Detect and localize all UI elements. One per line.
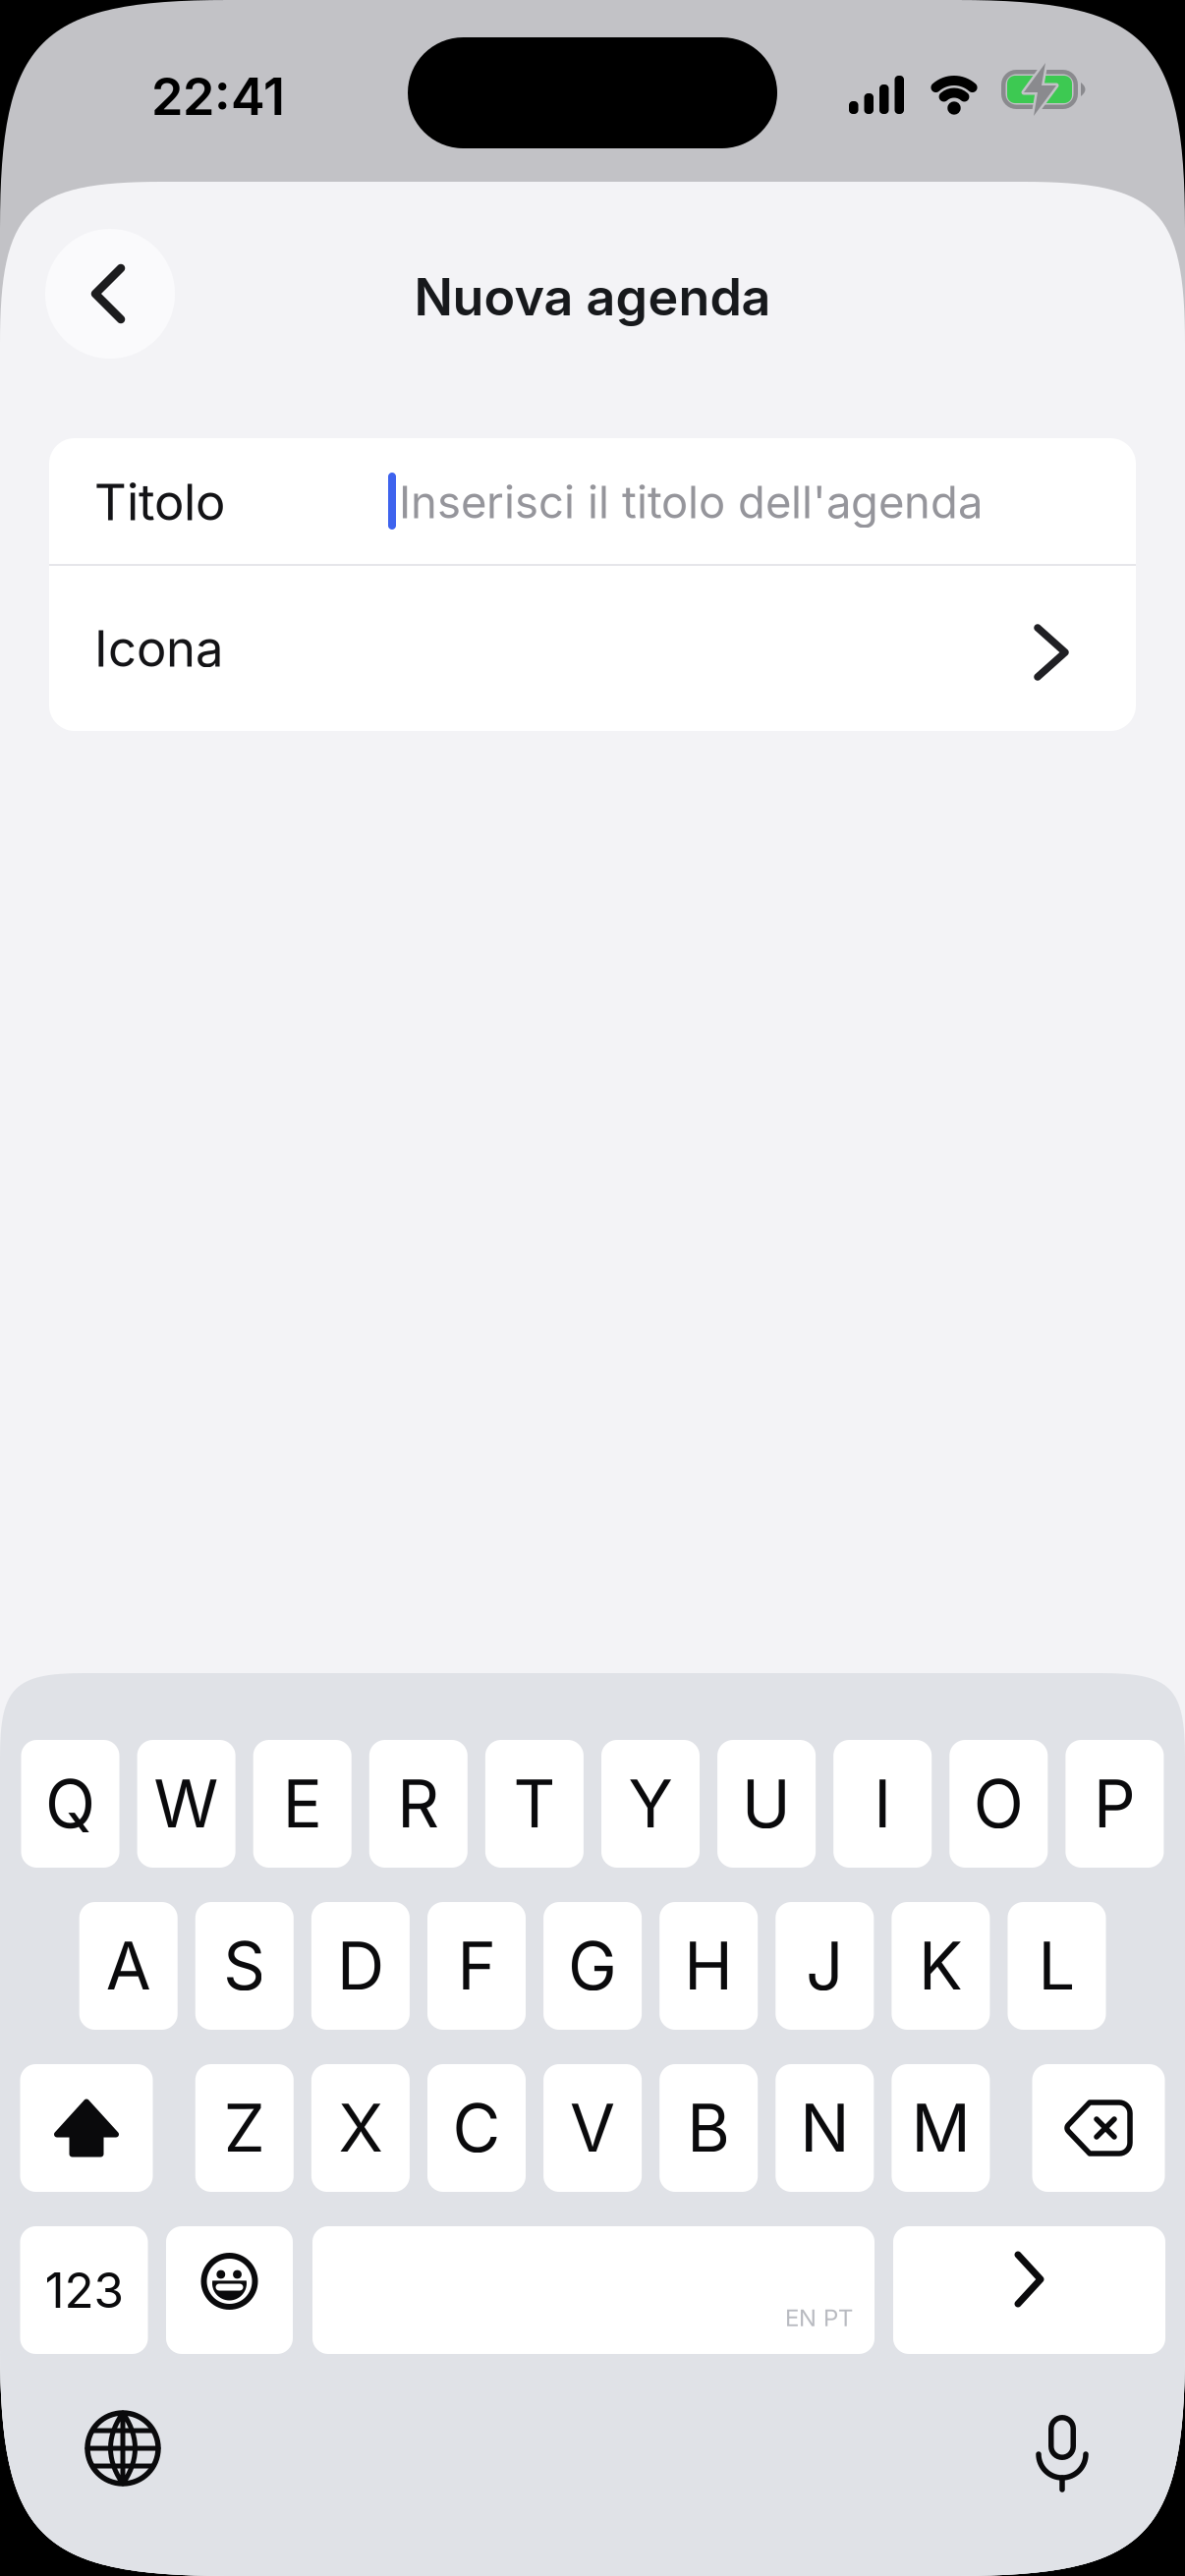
button[interactable]: Delete bbox=[1032, 2064, 1165, 2192]
button[interactable]: C bbox=[427, 2064, 526, 2192]
button[interactable]: Return bbox=[893, 2226, 1165, 2354]
button[interactable]: Icona bbox=[49, 566, 1136, 731]
staticText: M bbox=[911, 2089, 970, 2167]
button[interactable]: Dictation bbox=[1032, 2415, 1093, 2492]
button[interactable]: J bbox=[776, 1902, 874, 2030]
staticText: E bbox=[283, 1765, 322, 1842]
staticText: L bbox=[1038, 1927, 1075, 2005]
staticText: J bbox=[806, 1927, 843, 2005]
button[interactable]: 123 bbox=[20, 2226, 148, 2354]
staticText: B bbox=[687, 2089, 730, 2167]
button[interactable]: H bbox=[660, 1902, 758, 2030]
button[interactable]: L bbox=[1008, 1902, 1106, 2030]
staticText: P bbox=[1094, 1765, 1136, 1842]
button[interactable]: X bbox=[311, 2064, 410, 2192]
button[interactable]: T bbox=[485, 1740, 584, 1868]
button[interactable]: Emoji bbox=[166, 2226, 293, 2354]
staticText: W bbox=[154, 1765, 219, 1842]
button[interactable]: E bbox=[253, 1740, 351, 1868]
button[interactable]: Space bbox=[312, 2226, 875, 2354]
button[interactable]: W bbox=[137, 1740, 235, 1868]
staticText: Inserisci il titolo dell'agenda bbox=[399, 476, 983, 528]
button[interactable]: V bbox=[543, 2064, 642, 2192]
staticText: Y bbox=[628, 1765, 673, 1842]
button[interactable]: Titolo bbox=[49, 438, 1136, 565]
staticText: 123 bbox=[45, 2262, 123, 2319]
button[interactable]: N bbox=[776, 2064, 874, 2192]
button[interactable]: A bbox=[79, 1902, 178, 2030]
button[interactable]: Q bbox=[21, 1740, 119, 1868]
button[interactable]: Back bbox=[45, 229, 175, 359]
button[interactable]: Shift bbox=[20, 2064, 153, 2192]
staticText: T bbox=[513, 1765, 556, 1842]
staticText: F bbox=[457, 1927, 496, 2005]
button[interactable]: U bbox=[717, 1740, 816, 1868]
staticText: V bbox=[570, 2089, 615, 2167]
button[interactable]: K bbox=[892, 1902, 990, 2030]
button[interactable]: Z bbox=[195, 2064, 294, 2192]
staticText: N bbox=[800, 2089, 849, 2167]
button[interactable]: F bbox=[427, 1902, 526, 2030]
staticText: Nuova agenda bbox=[414, 267, 771, 327]
staticText: H bbox=[684, 1927, 733, 2005]
staticText: D bbox=[337, 1927, 384, 2005]
button[interactable]: M bbox=[892, 2064, 990, 2192]
staticText: S bbox=[223, 1927, 266, 2005]
staticText: X bbox=[338, 2089, 383, 2167]
button[interactable]: I bbox=[833, 1740, 932, 1868]
staticText: C bbox=[452, 2089, 501, 2167]
button[interactable]: S bbox=[195, 1902, 294, 2030]
staticText: I bbox=[874, 1765, 891, 1842]
staticText: Icona bbox=[94, 619, 223, 678]
staticText: 22:41 bbox=[151, 66, 285, 126]
button[interactable]: P bbox=[1066, 1740, 1164, 1868]
staticText: Titolo bbox=[94, 473, 225, 531]
button[interactable]: Next keyboard bbox=[85, 2410, 161, 2487]
staticText: R bbox=[397, 1765, 440, 1842]
button[interactable]: Y bbox=[601, 1740, 700, 1868]
button[interactable]: B bbox=[660, 2064, 758, 2192]
button[interactable]: G bbox=[543, 1902, 642, 2030]
staticText: O bbox=[974, 1765, 1024, 1842]
button[interactable]: O bbox=[949, 1740, 1048, 1868]
button[interactable]: R bbox=[369, 1740, 468, 1868]
staticText: Z bbox=[224, 2089, 265, 2167]
staticText: EN PT bbox=[785, 2304, 853, 2331]
staticText: K bbox=[919, 1927, 963, 2005]
staticText: A bbox=[106, 1927, 151, 2005]
staticText: Q bbox=[45, 1765, 95, 1842]
button[interactable]: D bbox=[311, 1902, 410, 2030]
staticText: U bbox=[742, 1765, 791, 1842]
staticText: G bbox=[568, 1927, 617, 2005]
